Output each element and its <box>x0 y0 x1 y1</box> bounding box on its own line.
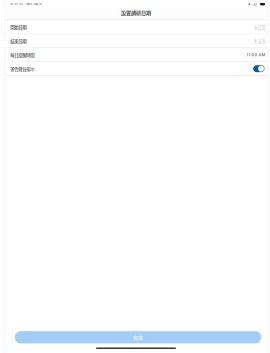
staticText: 設置調研日期 <box>121 9 151 16</box>
button[interactable]: 每日提醒時間 <box>5 48 267 61</box>
staticText: 警告聲音提示 <box>10 65 34 72</box>
staticText: 未設置 <box>254 24 266 30</box>
button[interactable]: 結束日期 <box>5 34 267 47</box>
staticText: 結束日期 <box>10 38 26 44</box>
button[interactable]: 開始日期 <box>5 21 267 34</box>
button[interactable]: 警告聲音提示 <box>5 62 267 75</box>
staticText: 每日提醒時間 <box>10 52 34 58</box>
staticText: 11:00 AM <box>247 52 266 57</box>
button[interactable]: 完成 <box>5 331 267 343</box>
staticText: 10:43 SA Thu 8 Aug 12 <box>10 3 42 6</box>
staticText: 完成 <box>133 334 143 341</box>
staticText: 未設置 <box>254 38 266 44</box>
staticText: 開始日期 <box>10 24 26 30</box>
